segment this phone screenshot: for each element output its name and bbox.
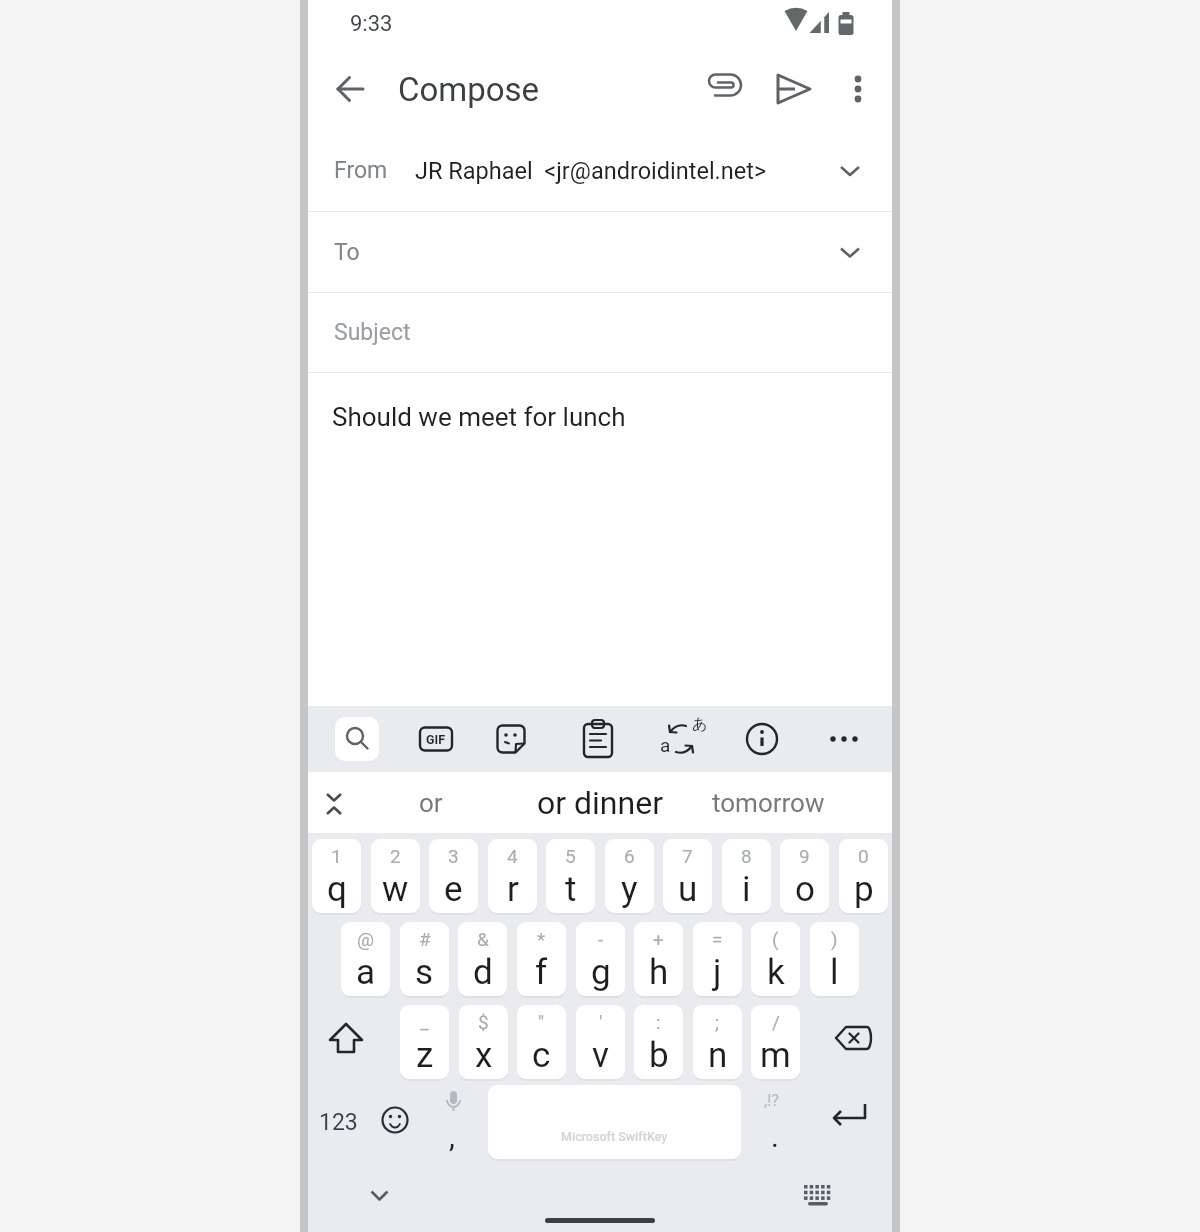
button[interactable]: ' <box>576 1005 625 1079</box>
button[interactable]: @ <box>341 922 390 996</box>
staticText: a <box>660 734 671 756</box>
button[interactable]: $ <box>459 1005 508 1079</box>
staticText: r <box>507 869 519 910</box>
button[interactable] <box>574 715 622 763</box>
staticText: GIF <box>426 732 446 747</box>
staticText: t <box>565 869 577 910</box>
staticText: l <box>830 952 839 993</box>
staticText: p <box>854 869 874 910</box>
staticText: 9:33 <box>350 11 393 37</box>
staticText: 5 <box>565 845 576 867</box>
button[interactable] <box>335 717 379 761</box>
button[interactable] <box>820 1095 876 1151</box>
button[interactable]: 2 <box>371 839 420 913</box>
button[interactable] <box>657 715 705 763</box>
button[interactable] <box>316 788 352 824</box>
button[interactable]: = <box>693 922 742 996</box>
button[interactable]: 5 <box>546 839 595 913</box>
staticText: tomorrow <box>712 788 825 818</box>
button[interactable] <box>825 1015 881 1071</box>
button[interactable]: 4 <box>488 839 537 913</box>
staticText: 3 <box>448 845 459 867</box>
staticText: JR Raphael <jr@androidintel.net> <box>415 157 767 185</box>
button[interactable]: 8 <box>722 839 771 913</box>
staticText: . <box>771 1119 779 1154</box>
staticText: y <box>621 869 638 910</box>
button[interactable]: _ <box>400 1005 449 1079</box>
staticText: or <box>419 788 443 818</box>
button[interactable] <box>412 715 460 763</box>
button[interactable]: - <box>576 922 625 996</box>
staticText: j <box>713 952 722 993</box>
button[interactable] <box>820 715 868 763</box>
button[interactable]: ,!? <box>746 1085 802 1159</box>
staticText: c <box>532 1035 551 1076</box>
button[interactable]: or dinner <box>500 772 700 833</box>
button[interactable]: tomorrow <box>688 772 848 833</box>
button[interactable]: 123 <box>308 1085 368 1159</box>
button[interactable]: ) <box>810 922 859 996</box>
button[interactable]: " <box>517 1005 566 1079</box>
staticText: * <box>537 928 546 950</box>
button[interactable] <box>372 1097 418 1143</box>
staticText: v <box>592 1035 609 1076</box>
staticText: g <box>591 952 611 993</box>
button[interactable]: 1 <box>312 839 361 913</box>
button[interactable] <box>769 65 817 113</box>
button[interactable]: 7 <box>663 839 712 913</box>
button[interactable]: or <box>371 772 491 833</box>
button[interactable]: Microsoft SwiftKey <box>488 1085 741 1159</box>
staticText: 1 <box>331 845 342 867</box>
staticText: Compose <box>398 70 540 109</box>
button[interactable]: : <box>634 1005 683 1079</box>
button[interactable] <box>738 715 786 763</box>
button[interactable] <box>834 65 882 113</box>
staticText: 8 <box>741 845 752 867</box>
staticText: h <box>649 952 669 993</box>
button[interactable] <box>323 61 379 117</box>
button[interactable] <box>545 1218 655 1223</box>
staticText: a <box>356 952 376 993</box>
staticText: 6 <box>624 845 635 867</box>
staticText: 123 <box>319 1109 358 1136</box>
button[interactable]: ( <box>751 922 800 996</box>
button[interactable]: To <box>308 212 892 292</box>
button[interactable]: * <box>517 922 566 996</box>
staticText: , <box>449 1119 455 1154</box>
staticText: d <box>473 952 493 993</box>
button[interactable]: Should we meet for lunch <box>308 373 892 706</box>
staticText: 9 <box>799 845 810 867</box>
button[interactable]: & <box>458 922 507 996</box>
button[interactable] <box>487 715 535 763</box>
staticText: + <box>653 928 664 950</box>
button[interactable]: 0 <box>839 839 888 913</box>
button[interactable]: 6 <box>605 839 654 913</box>
button[interactable]: 3 <box>429 839 478 913</box>
button[interactable]: 9 <box>780 839 829 913</box>
staticText: ' <box>599 1011 603 1033</box>
staticText: 2 <box>390 845 401 867</box>
staticText: ; <box>715 1011 720 1033</box>
staticText: ) <box>831 928 838 950</box>
button[interactable]: Subject <box>308 293 892 372</box>
staticText: # <box>419 928 431 950</box>
staticText: Subject <box>334 319 411 346</box>
staticText: e <box>444 869 463 910</box>
button[interactable] <box>701 65 749 113</box>
button[interactable] <box>318 1015 374 1071</box>
staticText: m <box>760 1035 791 1076</box>
staticText: " <box>538 1011 545 1033</box>
button[interactable]: ; <box>693 1005 742 1079</box>
button[interactable]: From <box>308 130 892 211</box>
staticText: 7 <box>682 845 693 867</box>
button[interactable]: / <box>751 1005 800 1079</box>
staticText: Should we meet for lunch <box>332 402 626 432</box>
staticText: or dinner <box>537 784 664 822</box>
staticText: b <box>649 1035 669 1076</box>
staticText: i <box>742 869 751 910</box>
button[interactable]: , <box>426 1085 482 1159</box>
button[interactable] <box>794 1173 842 1221</box>
button[interactable]: # <box>400 922 449 996</box>
button[interactable] <box>356 1173 404 1221</box>
button[interactable]: + <box>634 922 683 996</box>
